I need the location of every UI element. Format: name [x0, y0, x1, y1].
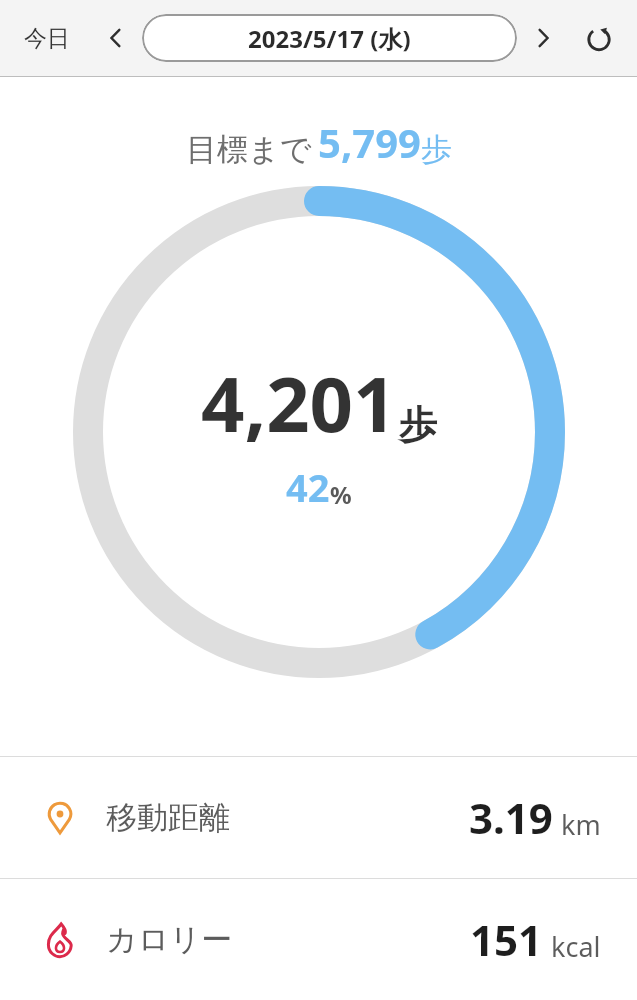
staticText: 151 [470, 911, 543, 968]
staticText: 歩 [399, 401, 437, 449]
staticText: km [561, 806, 601, 843]
staticText: 移動距離 [106, 798, 230, 837]
other: Distance [40, 798, 80, 838]
button[interactable]: Calories [0, 879, 637, 1000]
staticText: 今日 [24, 24, 70, 53]
button[interactable]: 2023/5/17 (水) [142, 14, 517, 62]
staticText: 4,201 [201, 351, 397, 455]
staticText: 5,799 [318, 115, 421, 169]
button[interactable]: Previous day [94, 16, 138, 60]
button[interactable]: Distance [0, 757, 637, 878]
staticText: カロリー [106, 920, 233, 959]
staticText: % [330, 478, 352, 511]
staticText: 42 [286, 461, 330, 513]
button[interactable]: Next day [521, 16, 565, 60]
other: Calories [40, 920, 80, 960]
button[interactable]: 今日 [14, 18, 80, 59]
staticText: 3.19 [469, 789, 553, 846]
staticText: kcal [551, 928, 601, 965]
staticText: 目標まで [186, 130, 312, 169]
staticText: 2023/5/17 (水) [248, 22, 411, 55]
button[interactable]: Refresh [575, 14, 623, 62]
staticText: 歩 [421, 130, 452, 169]
